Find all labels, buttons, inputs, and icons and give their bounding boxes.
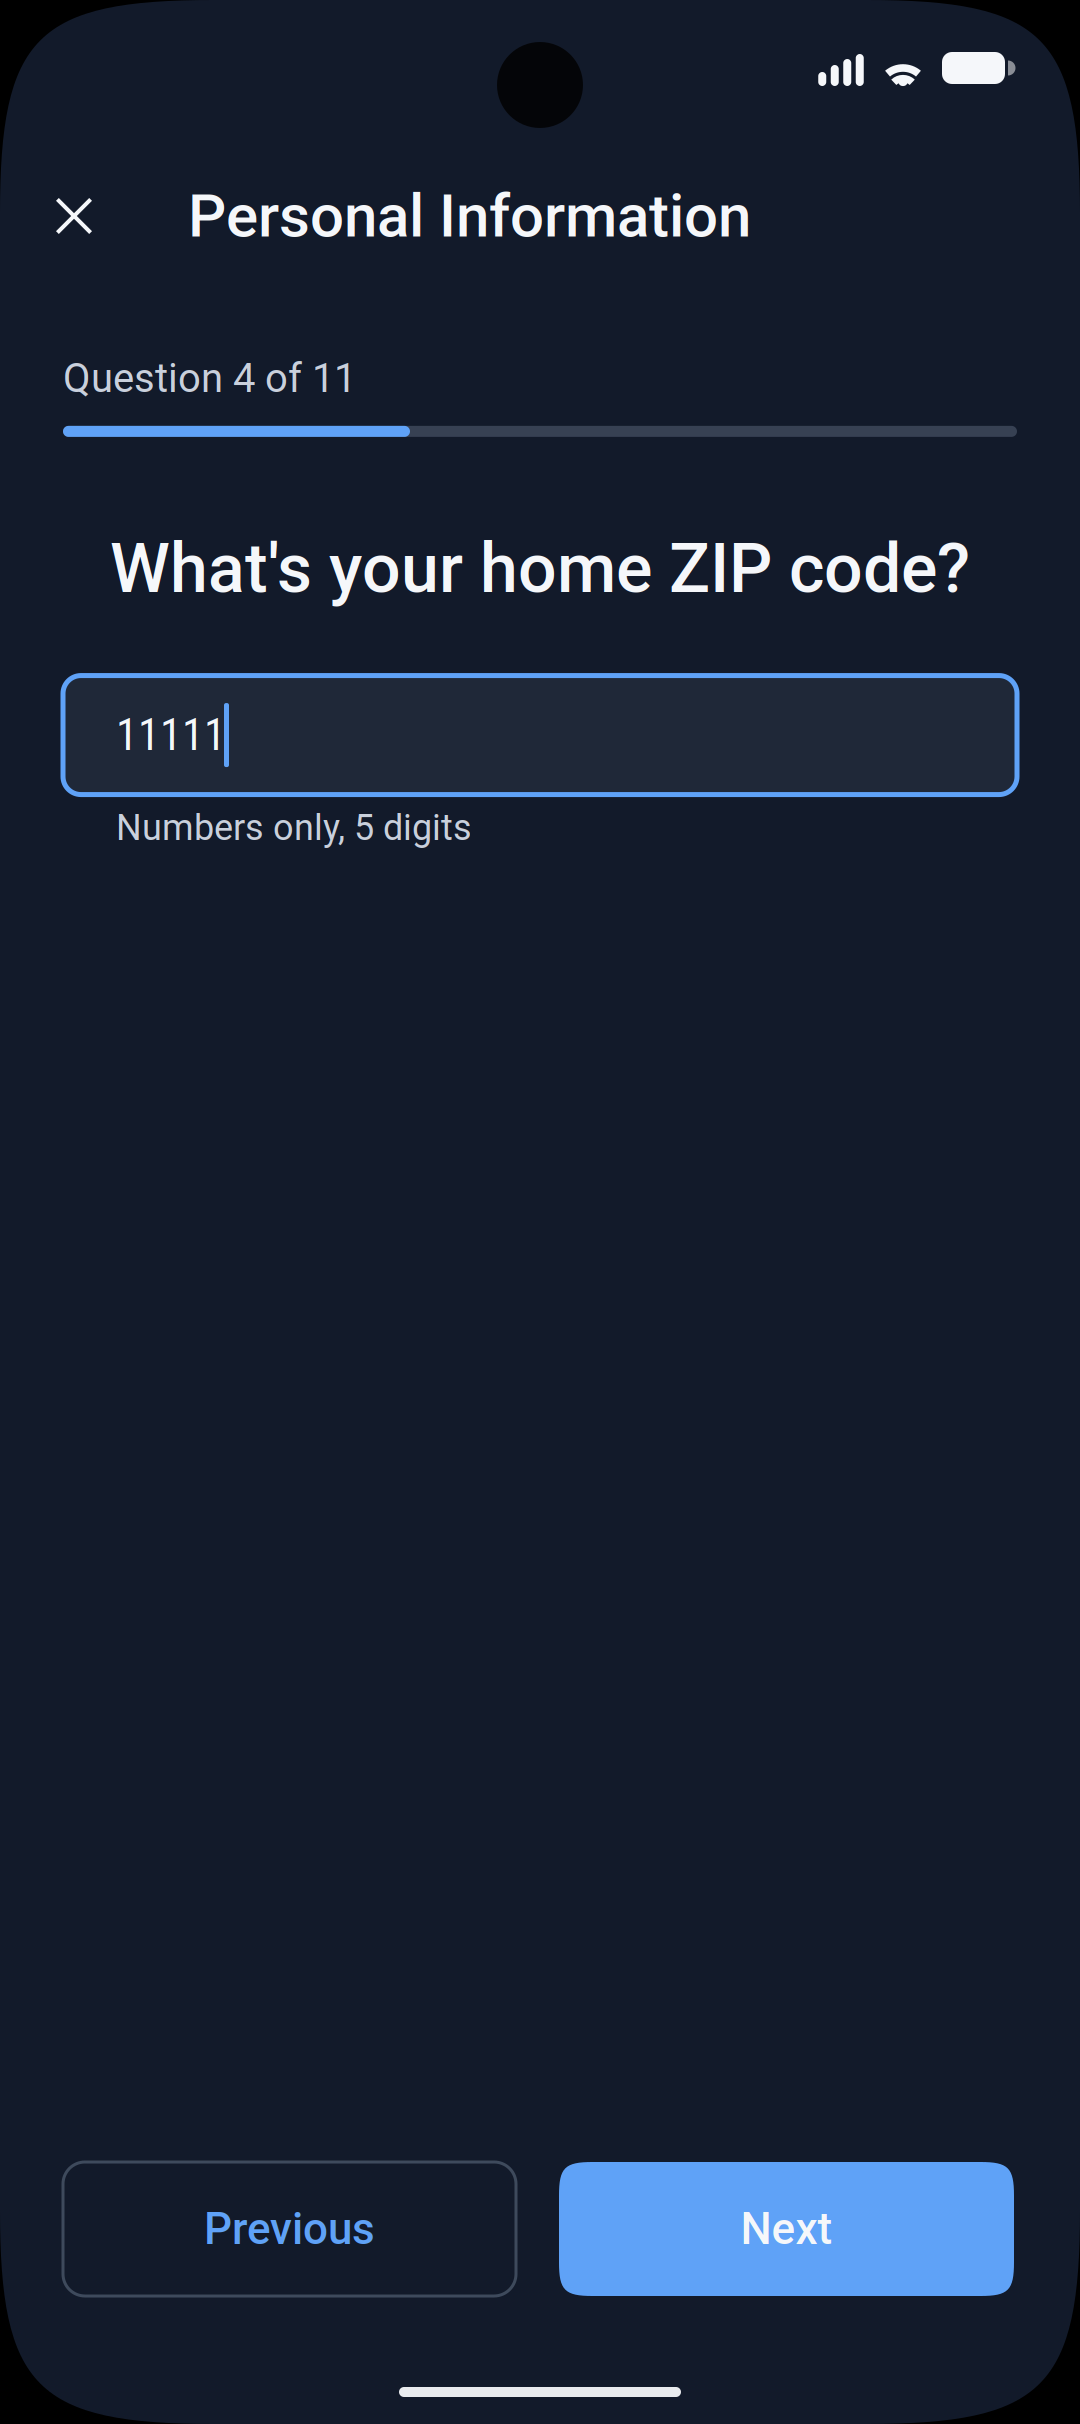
staticText: Previous	[204, 2203, 375, 2255]
button[interactable]: Close	[56, 170, 92, 262]
button[interactable]: Next	[559, 2162, 1014, 2296]
staticText: Numbers only, 5 digits	[116, 807, 472, 849]
staticText: What's your home ZIP code?	[110, 529, 970, 609]
button[interactable]: Previous	[63, 2162, 516, 2296]
staticText: Question 4 of 11	[63, 355, 356, 402]
staticText: Next	[740, 2203, 832, 2255]
staticText: 11111	[116, 709, 226, 761]
staticText: Personal Information	[188, 181, 751, 251]
